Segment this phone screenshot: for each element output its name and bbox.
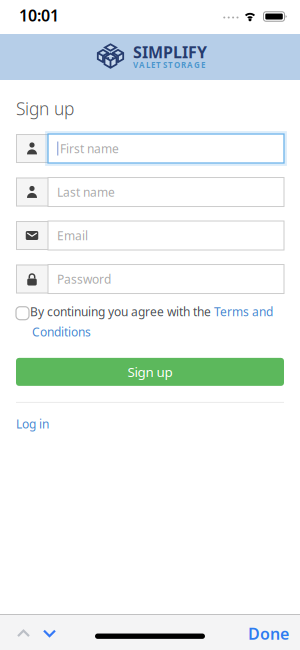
staticText: Terms and <box>214 303 273 319</box>
button[interactable]: Agree to terms <box>16 307 29 320</box>
staticText: Email <box>57 227 88 243</box>
staticText: Password <box>57 271 111 287</box>
staticText: Done <box>248 623 289 644</box>
staticText: First name <box>60 140 119 156</box>
staticText: 10:01 <box>19 5 59 26</box>
button[interactable]: Last name <box>16 177 284 206</box>
staticText: Conditions <box>32 324 91 340</box>
staticText: Sign up <box>16 97 74 120</box>
button[interactable]: Log in <box>16 416 49 432</box>
staticText: Sign up <box>127 363 172 381</box>
staticText: V A L E T S T O R A G E <box>133 60 205 70</box>
button[interactable]: First name <box>16 134 284 163</box>
button[interactable]: Next field <box>30 629 56 638</box>
button[interactable]: Password <box>16 264 284 293</box>
button[interactable]: Sign up <box>16 358 284 386</box>
button[interactable]: By continuing you agree with the <box>30 303 273 340</box>
staticText: SIMPLIFY <box>133 41 207 63</box>
button[interactable]: Done <box>248 623 300 644</box>
button[interactable]: Email <box>16 221 284 250</box>
staticText: Last name <box>57 184 115 200</box>
staticText: By continuing you agree with the <box>30 303 214 319</box>
staticText: Log in <box>16 416 49 432</box>
button[interactable]: Previous field <box>0 629 30 638</box>
